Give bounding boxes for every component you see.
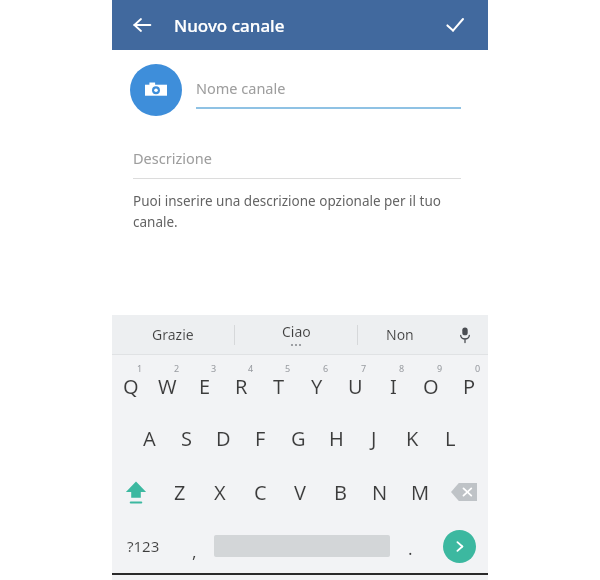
staticText: E (199, 373, 211, 400)
button[interactable]: Voice input (442, 315, 488, 354)
staticText: Q (123, 373, 139, 400)
button[interactable]: S (168, 411, 205, 465)
staticText: Y (311, 373, 323, 400)
button[interactable]: F (242, 411, 279, 465)
staticText: 2 (174, 362, 180, 374)
button[interactable]: L (431, 411, 469, 465)
button[interactable]: V (280, 465, 320, 519)
staticText: V (294, 479, 306, 506)
button[interactable]: O (412, 355, 450, 411)
button[interactable]: . (390, 519, 430, 573)
button[interactable]: Descrizione (133, 148, 461, 231)
staticText: 9 (437, 362, 443, 374)
staticText: M (411, 479, 430, 506)
button[interactable]: ?123 (112, 519, 174, 573)
button[interactable]: H (317, 411, 355, 465)
staticText: 7 (361, 362, 367, 374)
staticText: 0 (475, 362, 481, 374)
button[interactable]: P (450, 355, 488, 411)
button[interactable]: M (400, 465, 440, 519)
staticText: J (371, 425, 377, 452)
staticText: Non (386, 325, 414, 344)
staticText: 4 (248, 362, 254, 374)
staticText: T (273, 373, 285, 400)
button[interactable]: U (336, 355, 374, 411)
button[interactable]: Z (160, 465, 200, 519)
staticText: U (348, 373, 363, 400)
staticText: D (216, 425, 231, 452)
staticText: 8 (399, 362, 405, 374)
button[interactable]: Backspace (440, 465, 488, 519)
staticText: Nuovo canale (174, 14, 285, 37)
staticText: O (423, 373, 439, 400)
staticText: L (445, 425, 456, 452)
staticText: ?123 (127, 536, 160, 556)
staticText: P (463, 373, 476, 400)
button[interactable]: A (131, 411, 168, 465)
staticText: . (408, 537, 413, 560)
button[interactable]: X (200, 465, 240, 519)
button[interactable]: Done (436, 6, 474, 44)
staticText: K (406, 425, 419, 452)
button[interactable]: Grazie (112, 315, 234, 354)
staticText: W (158, 373, 177, 400)
staticText: Grazie (152, 325, 194, 344)
button[interactable]: , (174, 519, 214, 573)
button[interactable]: K (393, 411, 431, 465)
staticText: I (390, 373, 397, 400)
button[interactable]: C (240, 465, 280, 519)
button[interactable]: B (320, 465, 360, 519)
staticText: H (329, 425, 344, 452)
staticText: 1 (137, 362, 143, 374)
staticText: C (254, 479, 267, 506)
button[interactable]: E (186, 355, 223, 411)
button[interactable]: T (260, 355, 298, 411)
staticText: G (291, 425, 306, 452)
button[interactable]: Ciao (235, 322, 357, 341)
button[interactable]: Space (214, 519, 390, 573)
staticText: Ciao (282, 322, 311, 341)
button[interactable]: Set channel photo (130, 64, 182, 116)
button[interactable]: J (355, 411, 393, 465)
staticText: R (235, 373, 248, 400)
button[interactable]: Q (112, 355, 149, 411)
button[interactable]: Shift (112, 465, 160, 519)
button[interactable]: Back (122, 5, 162, 45)
button[interactable]: N (360, 465, 400, 519)
staticText: Z (174, 479, 186, 506)
button[interactable]: G (279, 411, 317, 465)
staticText: X (214, 479, 226, 506)
staticText: Puoi inserire una descrizione opzionale … (133, 192, 441, 210)
staticText: A (143, 425, 156, 452)
staticText: Nome canale (196, 78, 286, 98)
staticText: F (255, 425, 266, 452)
staticText: canale. (133, 213, 178, 231)
staticText: 6 (323, 362, 329, 374)
staticText: B (334, 479, 347, 506)
staticText: 3 (211, 362, 217, 374)
button[interactable]: D (205, 411, 242, 465)
staticText: 5 (285, 362, 291, 374)
staticText: S (181, 425, 192, 452)
button[interactable]: I (374, 355, 412, 411)
button[interactable]: Y (298, 355, 336, 411)
button[interactable]: Non (358, 315, 442, 354)
button[interactable]: W (149, 355, 186, 411)
staticText: N (372, 479, 388, 506)
button[interactable]: Enter (443, 530, 476, 563)
button[interactable]: Nome canale (196, 64, 461, 109)
staticText: , (192, 540, 197, 563)
button[interactable]: R (223, 355, 260, 411)
staticText: Descrizione (133, 148, 212, 168)
